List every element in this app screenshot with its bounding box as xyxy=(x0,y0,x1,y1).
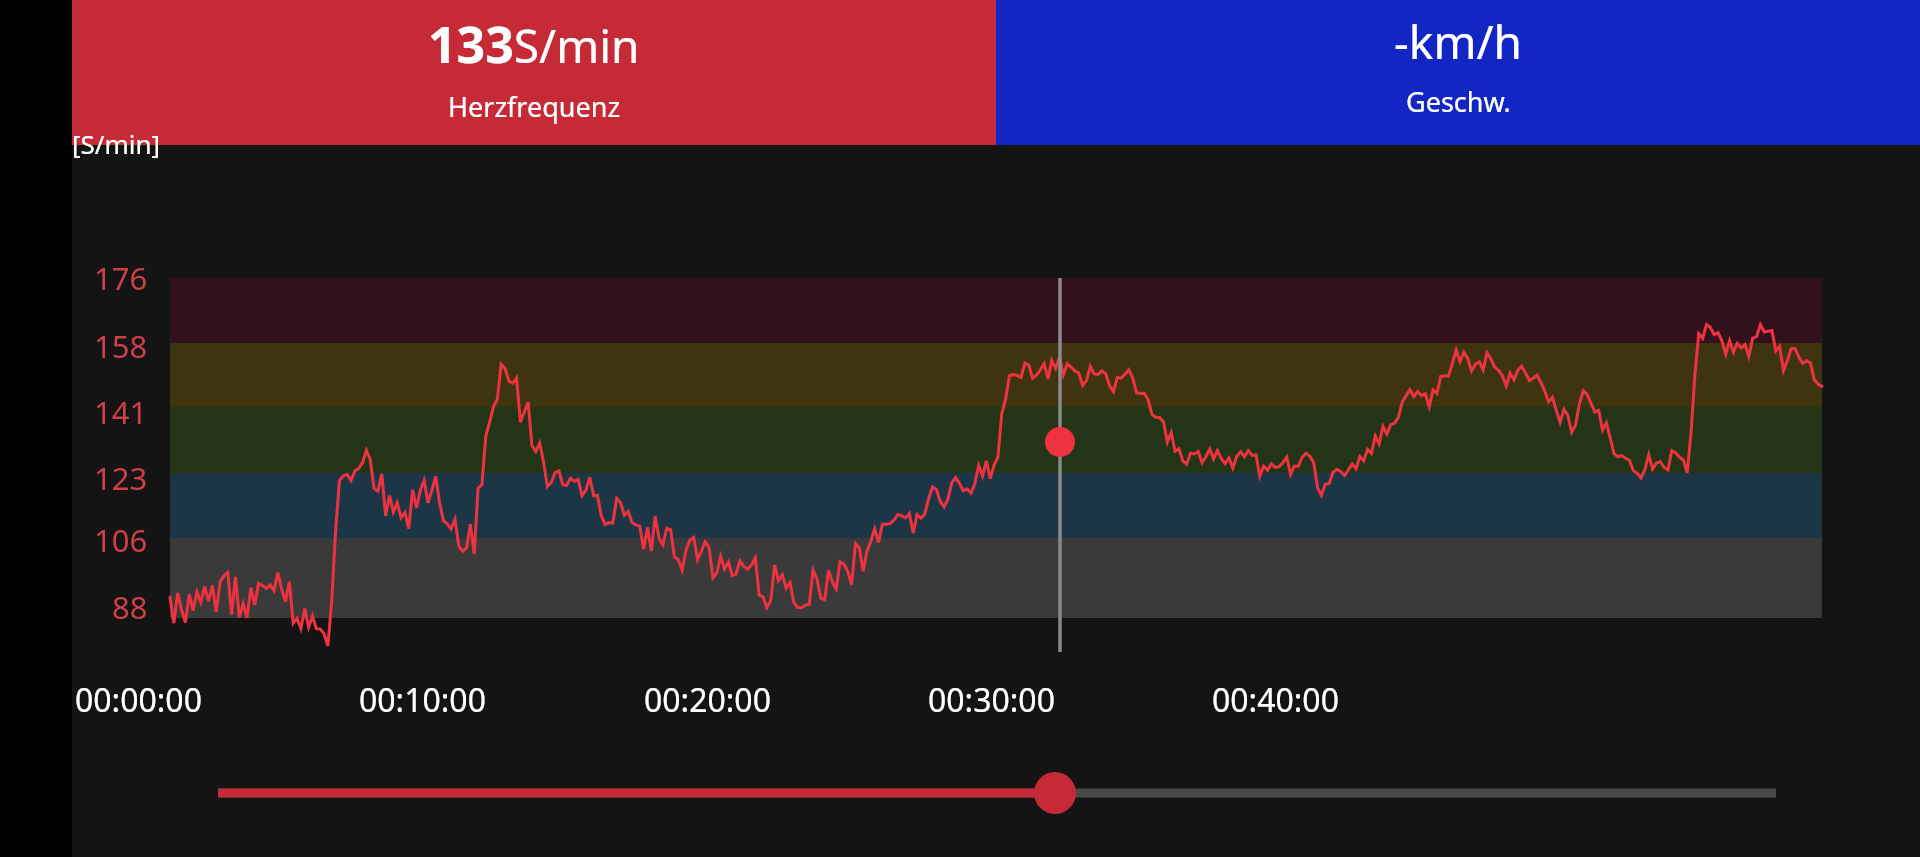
staticText: Geschw. xyxy=(1406,83,1511,120)
staticText: -km/h xyxy=(1394,10,1522,73)
button[interactable]: Herzfrequenz 133 S/min xyxy=(72,0,996,145)
staticText: 88 xyxy=(112,586,148,628)
staticText: 00:40:00 xyxy=(1212,678,1339,720)
staticText: 141 xyxy=(94,391,148,433)
staticText: 00:00:00 xyxy=(75,678,202,720)
staticText: 00:10:00 xyxy=(359,678,486,720)
staticText: 123 xyxy=(94,457,148,499)
staticText: 133S/min xyxy=(428,10,640,78)
staticText: 00:20:00 xyxy=(644,678,771,720)
staticText: Herzfrequenz xyxy=(448,88,621,125)
staticText: 106 xyxy=(94,519,148,561)
button[interactable]: Herzfrequenz Diagramm xyxy=(170,278,1822,618)
button[interactable]: Zeitposition xyxy=(200,760,1794,826)
staticText: [S/min] xyxy=(72,126,161,161)
button[interactable]: Geschwindigkeit xyxy=(996,0,1920,145)
staticText: 158 xyxy=(94,325,148,367)
staticText: 00:30:00 xyxy=(928,678,1055,720)
staticText: 176 xyxy=(94,257,148,299)
